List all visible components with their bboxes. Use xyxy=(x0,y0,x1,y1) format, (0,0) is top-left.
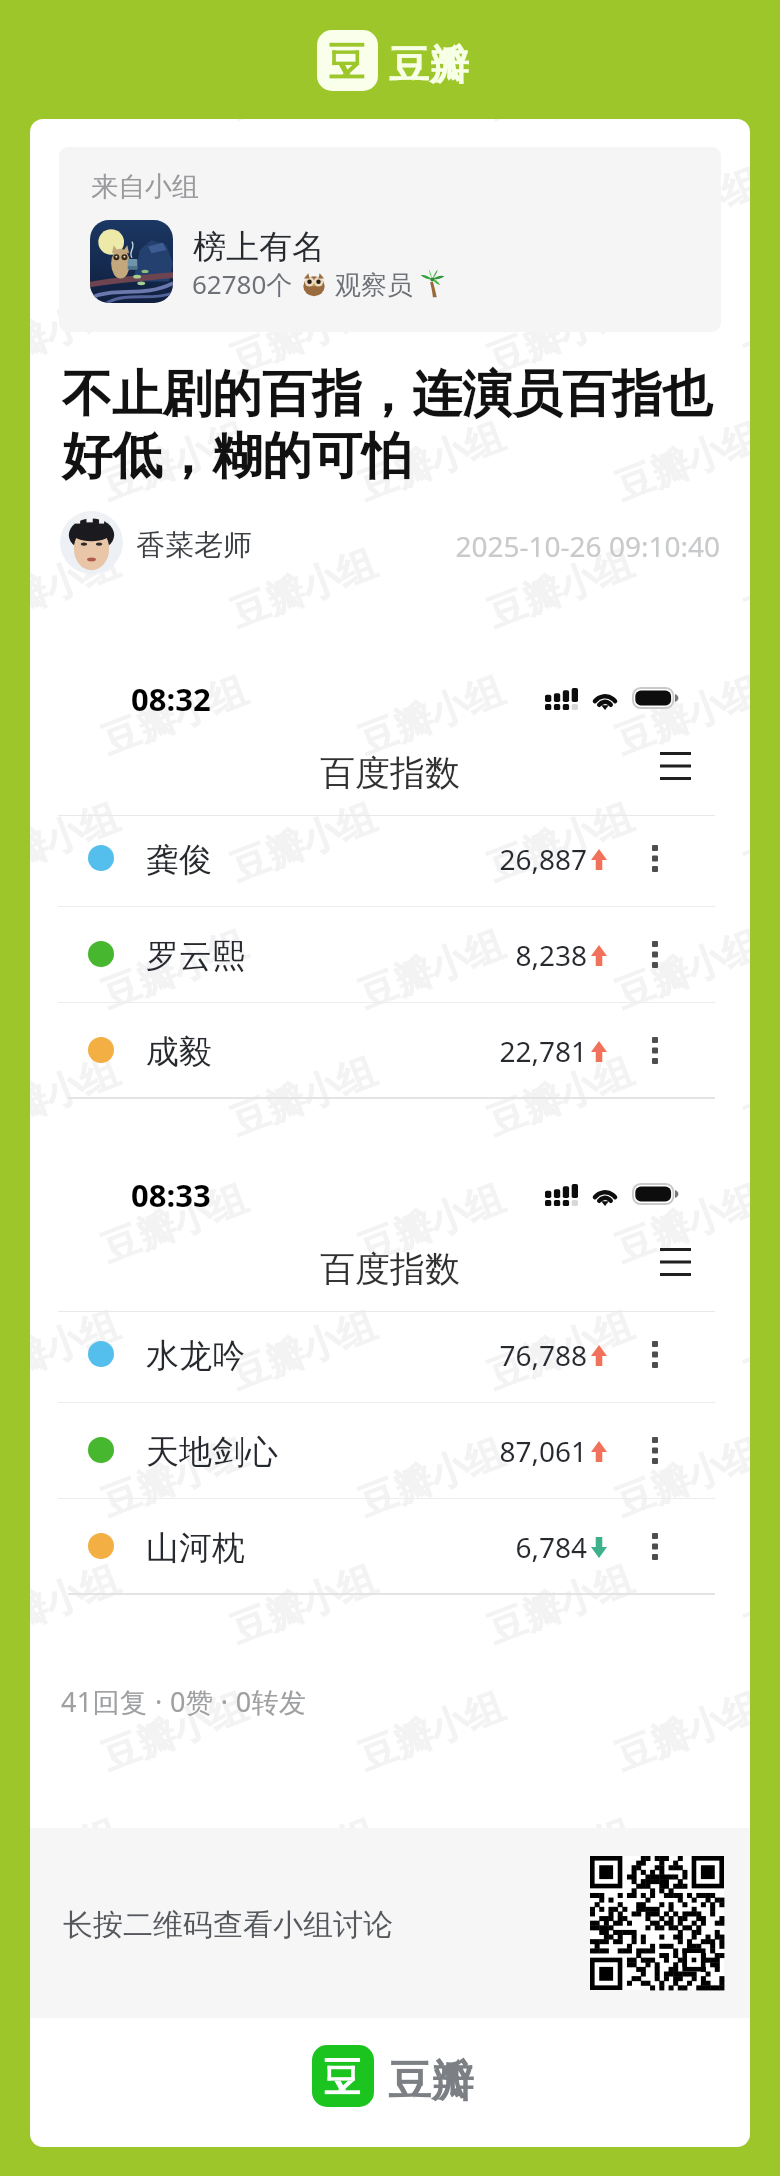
button[interactable]: More options xyxy=(636,930,674,978)
staticText: 豆瓣小组 xyxy=(608,412,750,511)
staticText: 豆瓣小组 xyxy=(30,1301,125,1400)
staticText: 豆瓣小组 xyxy=(351,920,510,1019)
staticText: 不止剧的百指，连演员百指也好低，糊的可怕 xyxy=(62,363,724,487)
staticText: 豆瓣 xyxy=(389,40,469,90)
button[interactable]: 水龙吟 xyxy=(58,1306,715,1402)
staticText: 豆瓣小组 xyxy=(30,1047,125,1146)
staticText: 来自小组 xyxy=(91,170,199,204)
staticText: 豆瓣小组 xyxy=(223,1555,382,1654)
staticText: 豆瓣小组 xyxy=(94,158,253,257)
staticText: 罗云熙 xyxy=(146,935,245,977)
staticText: 豆瓣小组 xyxy=(480,539,639,638)
button[interactable]: More options xyxy=(636,1330,674,1378)
staticText: 豆瓣小组 xyxy=(608,158,750,257)
staticText: 41回复 · 0赞 · 0转发 xyxy=(61,1683,307,1720)
staticText: 豆瓣小组 xyxy=(480,285,639,384)
staticText: 豆瓣小组 xyxy=(737,119,750,130)
staticText: 豆瓣小组 xyxy=(608,920,750,1019)
staticText: 22,781 xyxy=(420,1032,587,1070)
staticText: 豆瓣小组 xyxy=(223,1047,382,1146)
staticText: 豆瓣小组 xyxy=(480,1301,639,1400)
button[interactable]: Menu xyxy=(660,1248,691,1276)
button[interactable]: More options xyxy=(636,1522,674,1570)
staticText: 8,238 xyxy=(420,936,587,974)
button[interactable]: 龚俊 xyxy=(58,810,715,906)
staticText: 香菜老师 xyxy=(136,527,252,564)
staticText: 长按二维码查看小组讨论 xyxy=(63,1906,393,1944)
staticText: 豆瓣小组 xyxy=(223,1301,382,1400)
staticText: 豆瓣小组 xyxy=(30,539,125,638)
staticText: 观察员 xyxy=(328,266,420,302)
staticText: 水龙吟 xyxy=(146,1335,245,1377)
staticText: 成毅 xyxy=(146,1031,212,1073)
button[interactable]: 来自小组 xyxy=(59,147,721,332)
staticText: 豆瓣小组 xyxy=(351,412,510,511)
staticText: 豆瓣小组 xyxy=(30,793,125,892)
staticText: 豆瓣小组 xyxy=(351,666,510,765)
staticText: 豆瓣小组 xyxy=(480,1555,639,1654)
staticText: 豆瓣小组 xyxy=(94,1428,253,1527)
staticText: 豆瓣小组 xyxy=(223,539,382,638)
button[interactable]: 罗云熙 xyxy=(58,906,715,1002)
staticText: 豆瓣小组 xyxy=(608,1174,750,1273)
staticText: 08:32 xyxy=(131,678,211,720)
staticText: 豆瓣小组 xyxy=(30,119,125,130)
staticText: 豆瓣小组 xyxy=(94,1174,253,1273)
staticText: 豆瓣小组 xyxy=(480,1047,639,1146)
staticText: 豆瓣小组 xyxy=(94,412,253,511)
button[interactable]: More options xyxy=(636,1026,674,1074)
staticText: 76,788 xyxy=(420,1336,587,1374)
staticText: 豆瓣小组 xyxy=(608,1428,750,1527)
staticText: 62780个 xyxy=(192,266,300,302)
button[interactable]: Menu xyxy=(660,752,691,780)
staticText: 龚俊 xyxy=(146,839,212,881)
staticText: 豆瓣小组 xyxy=(480,793,639,892)
staticText: 豆瓣小组 xyxy=(351,1428,510,1527)
staticText: 87,061 xyxy=(420,1432,587,1470)
staticText: 2025-10-26 09:10:40 xyxy=(428,527,720,565)
staticText: 百度指数 xyxy=(30,751,750,795)
button[interactable]: Douban xyxy=(317,30,378,91)
staticText: 豆瓣小组 xyxy=(223,793,382,892)
staticText: 豆瓣小组 xyxy=(351,1174,510,1273)
staticText: 榜上有名 xyxy=(193,226,325,268)
button[interactable]: 成毅 xyxy=(58,1002,715,1098)
staticText: 豆瓣小组 xyxy=(223,285,382,384)
staticText: 豆瓣小组 xyxy=(30,285,125,384)
button[interactable]: 山河枕 xyxy=(58,1498,715,1594)
button[interactable]: 天地剑心 xyxy=(58,1402,715,1498)
staticText: 天地剑心 xyxy=(146,1431,278,1473)
staticText: 豆瓣小组 xyxy=(94,1682,253,1781)
staticText: 百度指数 xyxy=(30,1247,750,1291)
button[interactable]: More options xyxy=(636,1426,674,1474)
staticText: 26,887 xyxy=(420,840,587,878)
button[interactable]: Douban xyxy=(312,2045,374,2107)
staticText: 山河枕 xyxy=(146,1527,245,1569)
staticText: 豆瓣小组 xyxy=(94,920,253,1019)
staticText: 豆瓣小组 xyxy=(351,1682,510,1781)
staticText: 豆瓣 xyxy=(388,2055,474,2109)
staticText: 豆瓣小组 xyxy=(94,666,253,765)
staticText: 08:33 xyxy=(131,1174,211,1216)
staticText: 6,784 xyxy=(420,1528,587,1566)
button[interactable]: More options xyxy=(636,834,674,882)
staticText: 豆瓣小组 xyxy=(30,1555,125,1654)
staticText: 豆瓣小组 xyxy=(608,1682,750,1781)
staticText: 豆瓣小组 xyxy=(608,666,750,765)
